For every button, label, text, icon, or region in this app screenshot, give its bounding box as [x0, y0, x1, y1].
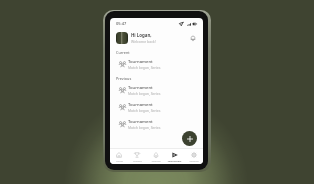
staticText: Home [116, 159, 123, 162]
staticText: Previous [116, 76, 132, 81]
button[interactable]: Leaders [128, 149, 146, 164]
button[interactable]: Tournament [110, 56, 203, 73]
staticText: Training [151, 159, 161, 162]
button[interactable]: Notifications [188, 33, 197, 42]
button[interactable]: Tournament [110, 116, 203, 133]
staticText: Current [116, 50, 130, 55]
staticText: Tournament [128, 85, 153, 91]
staticText: Match began, Series [128, 91, 161, 96]
staticText: Match began, Series [128, 125, 161, 130]
staticText: Leaders [133, 159, 142, 162]
staticText: Tournament [128, 102, 153, 108]
staticText: Welcome back! [131, 39, 156, 44]
button[interactable]: Tournament [110, 82, 203, 99]
button[interactable]: Home [110, 149, 128, 164]
staticText: 05:47 [116, 21, 127, 26]
button[interactable]: Add tournament [182, 131, 197, 146]
button[interactable]: Settings [184, 149, 203, 164]
button[interactable]: Training [146, 149, 165, 164]
staticText: Tournament [167, 159, 182, 162]
staticText: Tournament [128, 59, 153, 65]
staticText: Hi Logan, [131, 32, 152, 38]
button[interactable]: Tournament [165, 149, 184, 164]
staticText: Settings [189, 159, 199, 162]
button[interactable]: Tournament [110, 99, 203, 116]
staticText: Match began, Series [128, 108, 161, 113]
staticText: Match began, Series [128, 65, 161, 70]
staticText: Tournament [128, 119, 153, 125]
